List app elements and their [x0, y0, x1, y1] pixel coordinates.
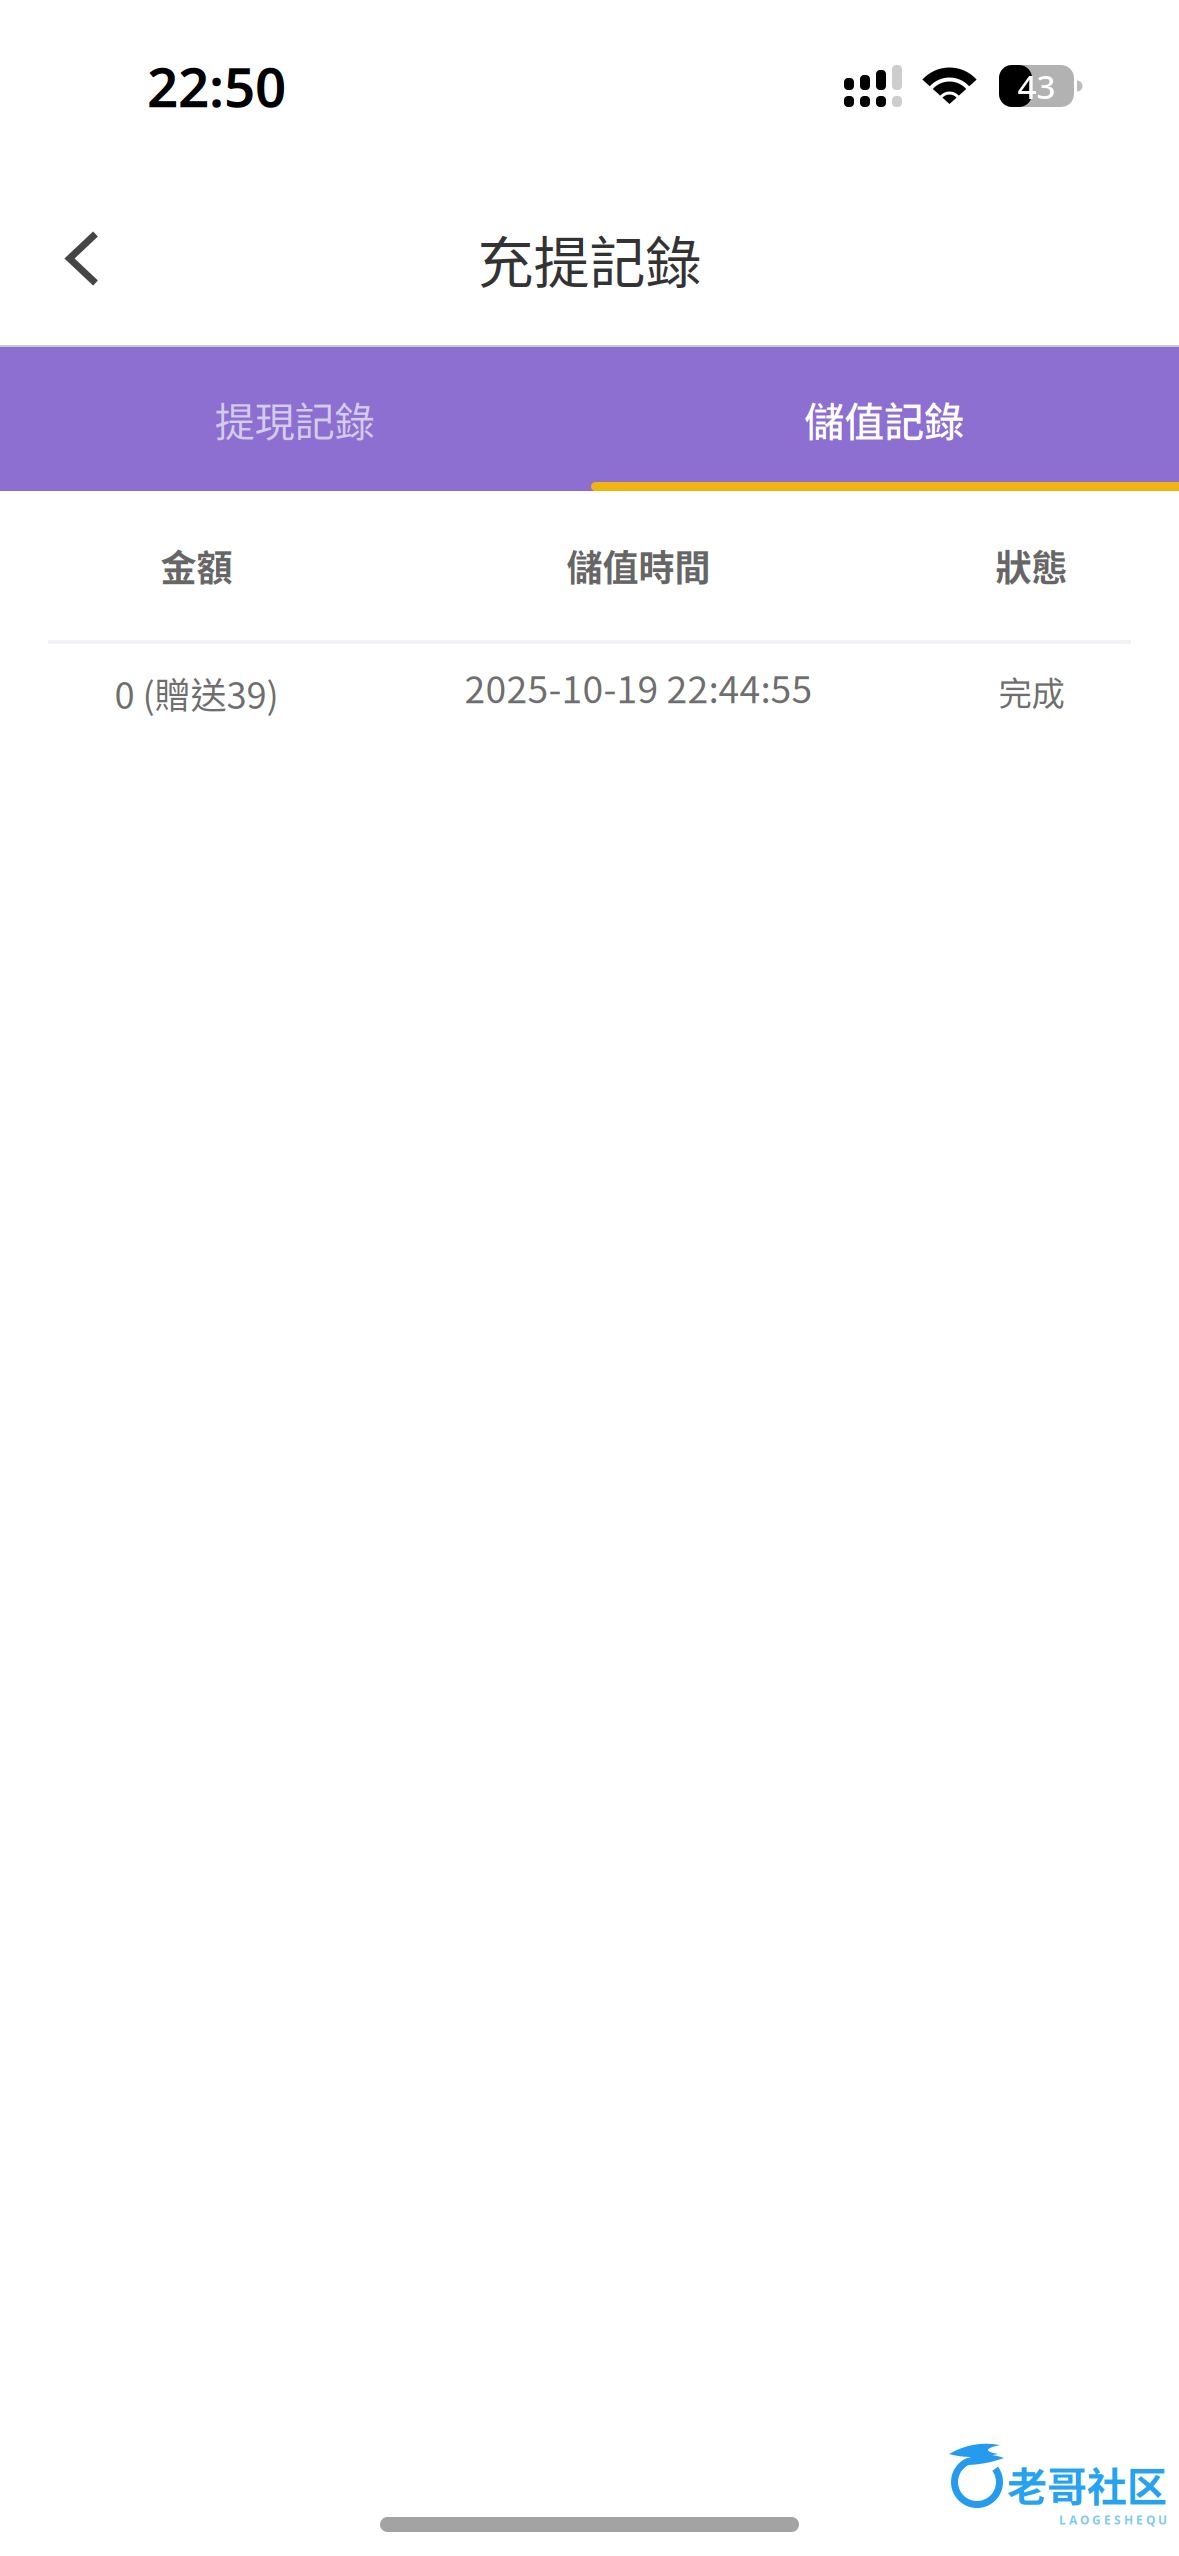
staticText: 2025-10-19 22:44:55: [464, 660, 812, 714]
button[interactable]: Back: [0, 193, 170, 323]
staticText: 提現記錄: [215, 390, 375, 448]
staticText: 22:50: [147, 50, 286, 122]
staticText: 0 (贈送39): [114, 667, 278, 719]
staticText: 充提記錄: [477, 218, 701, 299]
button[interactable]: 提現記錄: [0, 347, 589, 491]
staticText: 老哥社区: [1007, 2455, 1167, 2513]
staticText: 儲值記錄: [804, 390, 964, 448]
staticText: 完成: [998, 667, 1064, 715]
staticText: 狀態: [995, 539, 1067, 591]
staticText: L A O G E S H E Q U: [1059, 2512, 1167, 2528]
staticText: 金額: [160, 539, 232, 591]
staticText: 43: [1017, 64, 1055, 108]
staticText: 儲值時間: [566, 539, 710, 591]
button[interactable]: 儲值記錄: [589, 347, 1179, 491]
